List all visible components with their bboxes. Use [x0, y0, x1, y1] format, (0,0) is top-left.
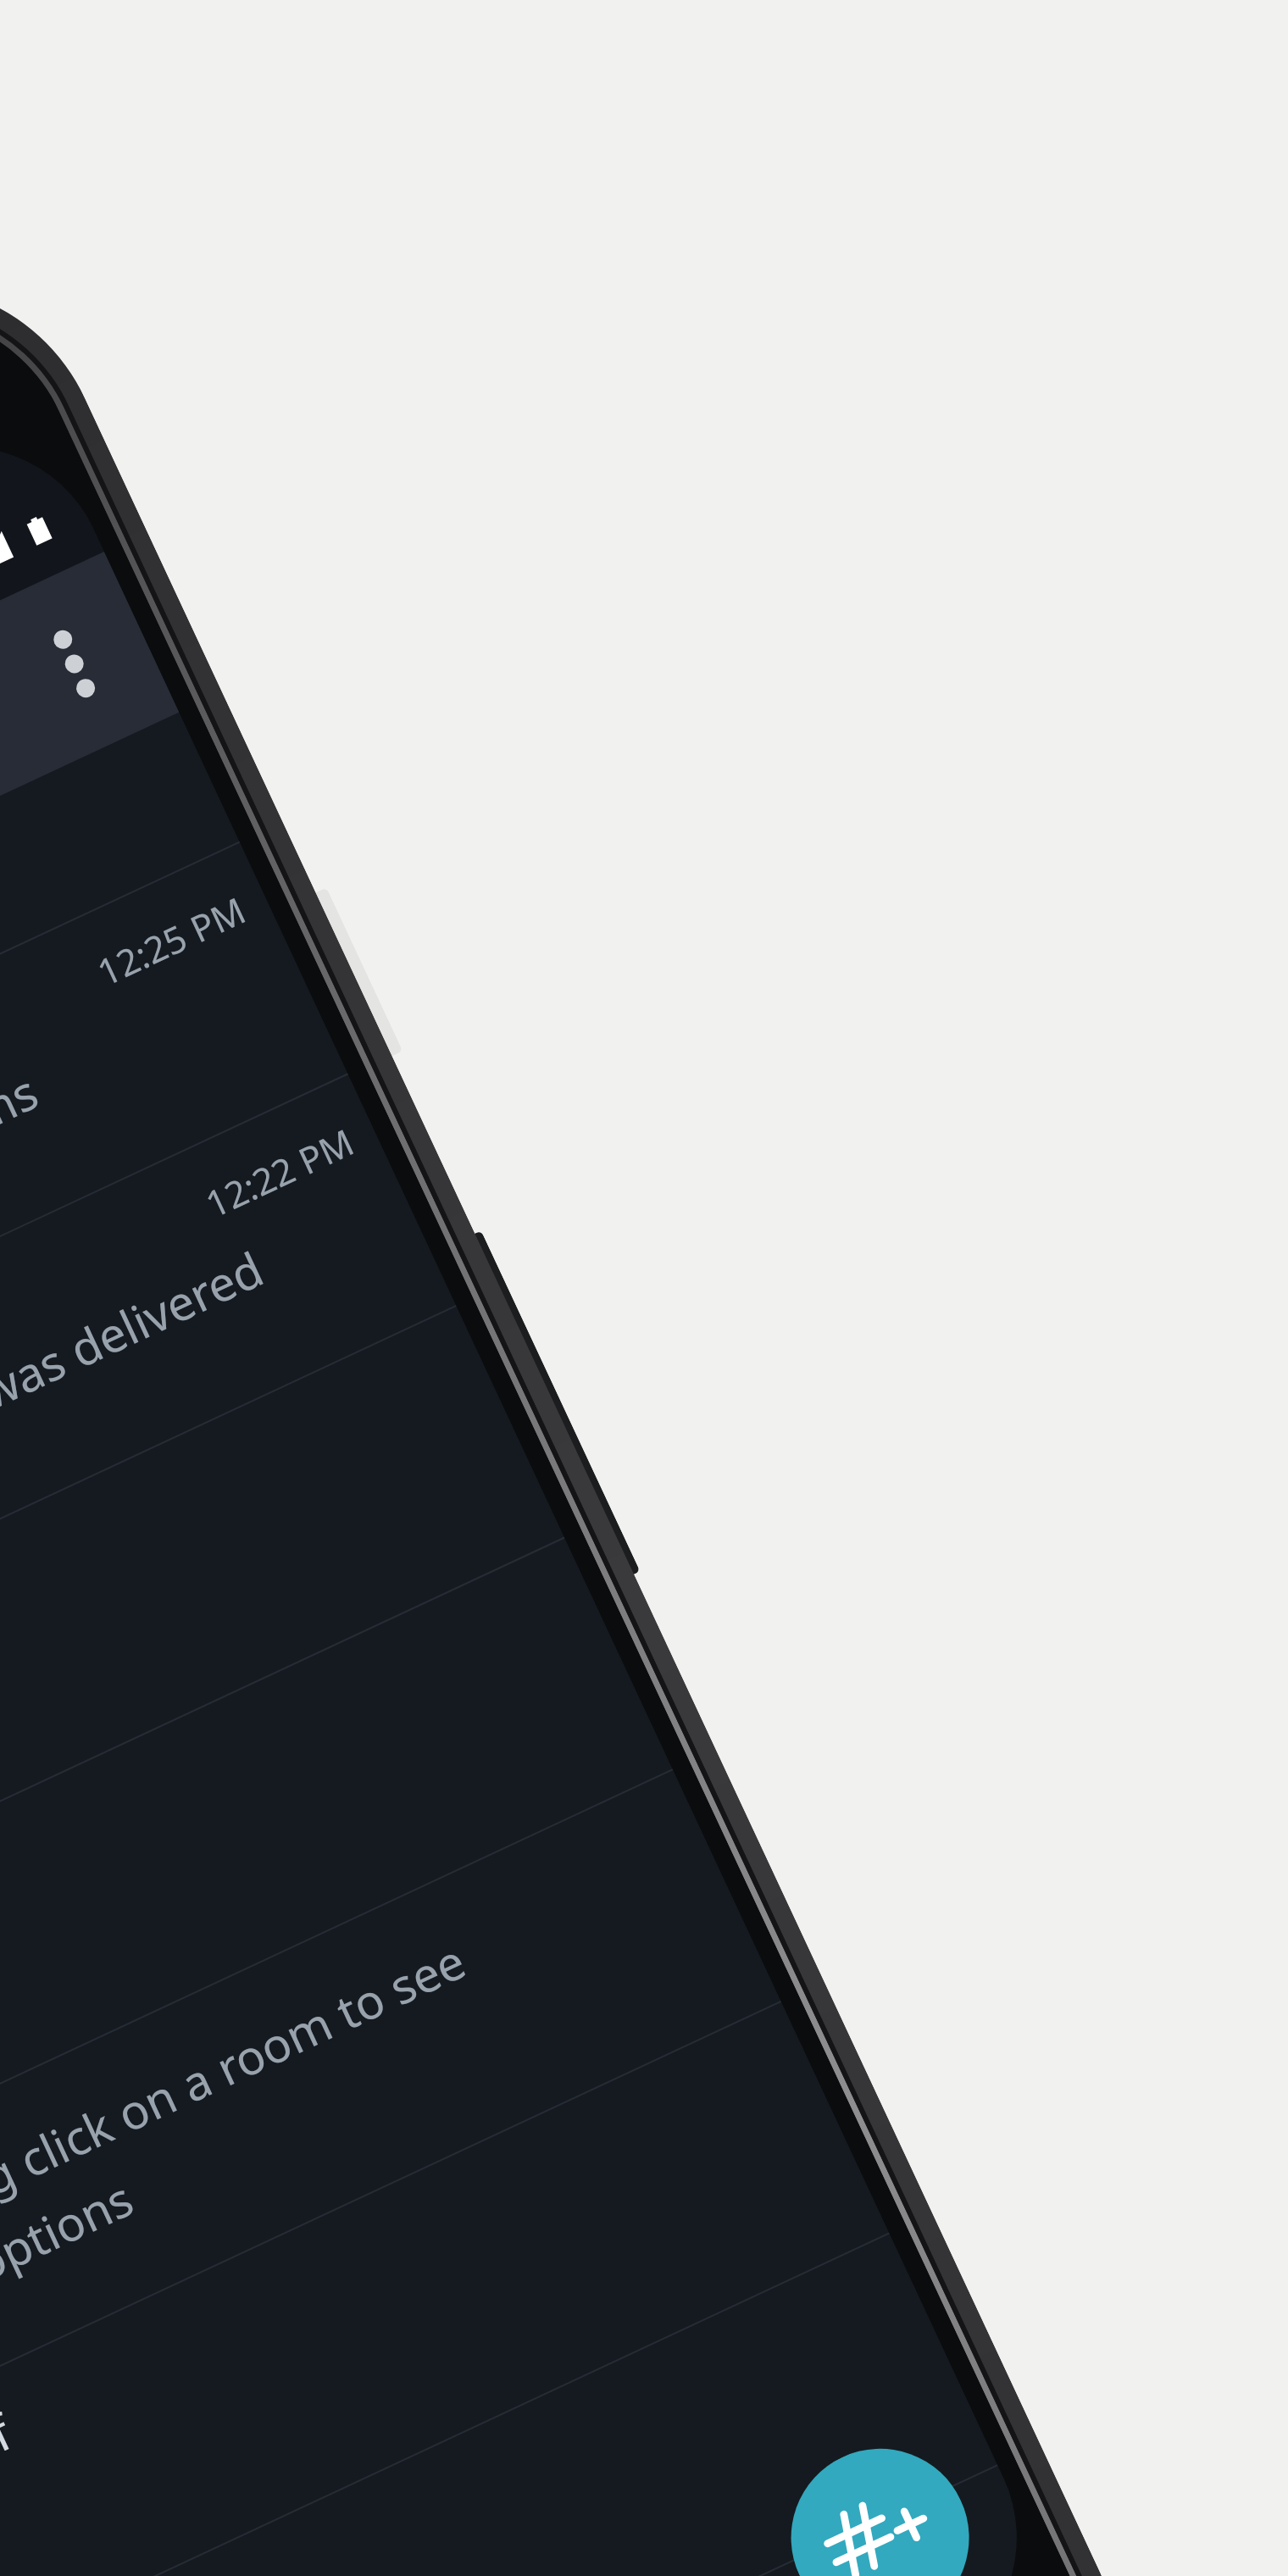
staticText: Notes to self — [0, 2398, 22, 2576]
staticText: 12:22 PM — [197, 1116, 362, 1229]
button[interactable]: Random chat — [0, 1538, 673, 2285]
staticText: The message that you just sent was deliv… — [0, 1236, 273, 1722]
button[interactable]: 12:25 PM — [0, 843, 348, 1590]
button[interactable]: Archive — [0, 2234, 998, 2576]
button[interactable]: Design team — [0, 1306, 565, 2054]
button[interactable]: Matrix HQ — [0, 1770, 781, 2517]
button[interactable]: 12:27 PM — [0, 712, 240, 1358]
staticText: Hint: you can long click on a room to se… — [0, 1928, 506, 2435]
staticText: 12:25 PM — [89, 885, 254, 997]
button[interactable]: 12:22 PM — [0, 1075, 457, 1822]
button[interactable]: Notes to self — [0, 2002, 890, 2576]
button[interactable]: Create new room — [762, 2419, 998, 2576]
staticText: Could not be sent to the bridge as mms — [0, 1059, 47, 1490]
button[interactable]: More options — [0, 565, 173, 763]
